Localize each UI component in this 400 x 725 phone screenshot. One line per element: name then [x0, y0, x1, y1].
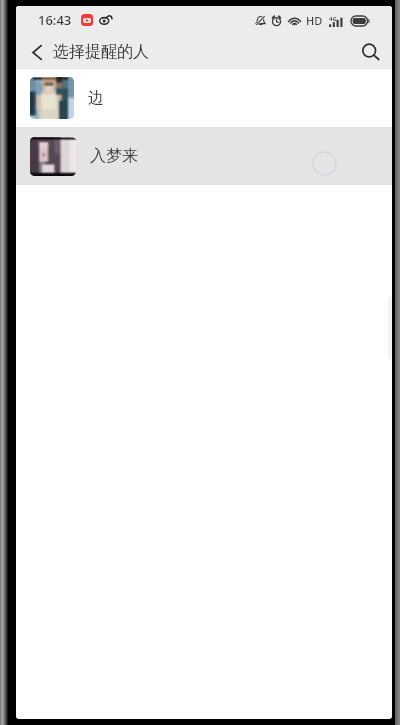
staticText: 边 [88, 88, 104, 108]
button[interactable]: Back [20, 35, 54, 69]
staticText: 4G [329, 15, 337, 23]
button[interactable]: 边 [16, 69, 392, 127]
button[interactable]: 入梦来 [16, 127, 392, 185]
button[interactable]: Search [354, 35, 388, 69]
staticText: 16:43 [38, 11, 72, 29]
staticText: 选择提醒的人 [53, 42, 149, 62]
staticText: HD [306, 13, 323, 28]
staticText: 入梦来 [90, 146, 138, 166]
